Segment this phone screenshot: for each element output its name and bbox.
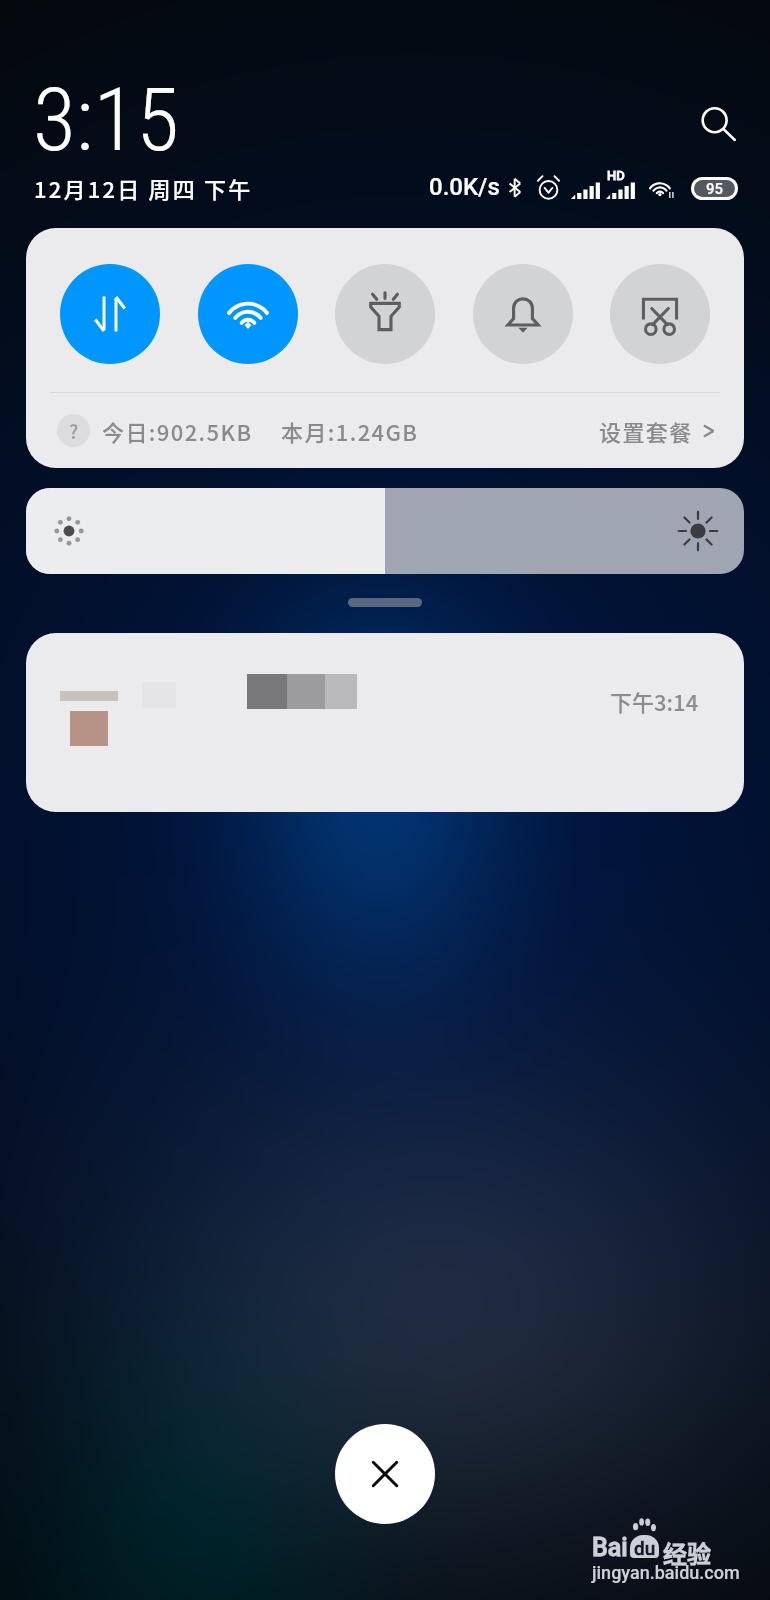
button[interactable]: Close (335, 1424, 435, 1524)
staticText: HD (607, 168, 625, 183)
button[interactable]: Search (688, 94, 748, 154)
button[interactable]: Expand (348, 598, 422, 607)
staticText: 经验 (663, 1535, 711, 1570)
staticText: 设置套餐 (599, 415, 693, 447)
button[interactable]: 下午3:14 (26, 633, 744, 812)
staticText: 3:15 (33, 68, 179, 171)
staticText: 今日:902.5KB (102, 415, 253, 447)
staticText: Bai (592, 1533, 628, 1562)
button[interactable]: Brightness (26, 488, 744, 574)
button[interactable]: Screenshot (610, 264, 710, 364)
button[interactable]: 设置套餐 (599, 415, 715, 447)
staticText: du (634, 1537, 656, 1558)
staticText: ? (69, 417, 79, 445)
button[interactable]: Help (57, 414, 90, 447)
button[interactable]: Mobile data (60, 264, 160, 364)
button[interactable]: Flashlight (335, 264, 435, 364)
staticText: 0.0K/s (429, 173, 500, 201)
staticText: 95 (706, 180, 724, 197)
button[interactable]: Silent (473, 264, 573, 364)
button[interactable]: Wi-Fi (198, 264, 298, 364)
staticText: 下午3:14 (610, 685, 699, 717)
staticText: jingyan.baidu.com (592, 1562, 740, 1583)
staticText: 12月12日 周四 下午 (34, 172, 253, 204)
staticText: 本月:1.24GB (281, 415, 419, 447)
